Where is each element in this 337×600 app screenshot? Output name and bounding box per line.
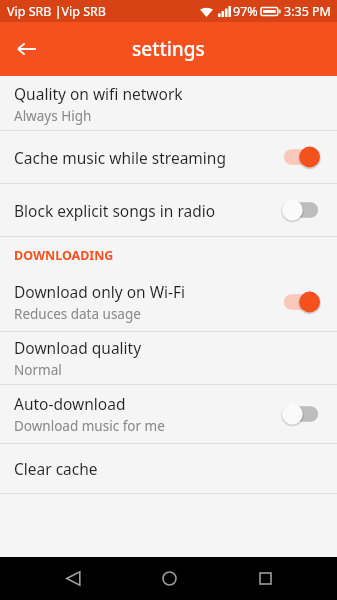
button[interactable]: Toggle on xyxy=(279,289,323,315)
staticText: Clear cache xyxy=(14,458,98,479)
staticText: Reduces data usage xyxy=(14,305,141,323)
staticText: Auto-download xyxy=(14,393,126,414)
button[interactable]: Toggle off xyxy=(279,197,323,223)
staticText: Download quality xyxy=(14,337,142,358)
staticText: Always High xyxy=(14,107,92,125)
button[interactable]: Download quality xyxy=(0,332,337,384)
button[interactable]: Auto-download xyxy=(0,385,337,443)
button[interactable]: Recents xyxy=(241,557,289,600)
staticText: Quality on wifi network xyxy=(14,83,183,104)
staticText: Download music for me xyxy=(14,417,165,435)
staticText: 97% xyxy=(233,3,258,20)
button[interactable]: Cache music while streaming xyxy=(0,131,337,183)
button[interactable]: Back xyxy=(49,557,97,600)
button[interactable]: Clear cache xyxy=(0,444,337,493)
staticText: Block explicit songs in radio xyxy=(14,200,216,221)
staticText: Download only on Wi-Fi xyxy=(14,281,186,302)
button[interactable]: Download only on Wi-Fi xyxy=(0,273,337,331)
staticText: Normal xyxy=(14,361,62,379)
staticText: Vip SRB |Vip SRB xyxy=(7,3,106,20)
staticText: 3:35 PM xyxy=(284,3,331,20)
staticText: Cache music while streaming xyxy=(14,147,226,168)
staticText: settings xyxy=(132,36,205,62)
button[interactable]: Block explicit songs in radio xyxy=(0,184,337,236)
button[interactable]: Toggle on xyxy=(279,144,323,170)
button[interactable]: Home xyxy=(145,557,193,600)
button[interactable]: Quality on wifi network xyxy=(0,78,337,130)
button[interactable]: Back xyxy=(6,28,48,70)
staticText: DOWNLOADING xyxy=(14,247,114,264)
button[interactable]: Toggle off xyxy=(279,401,323,427)
